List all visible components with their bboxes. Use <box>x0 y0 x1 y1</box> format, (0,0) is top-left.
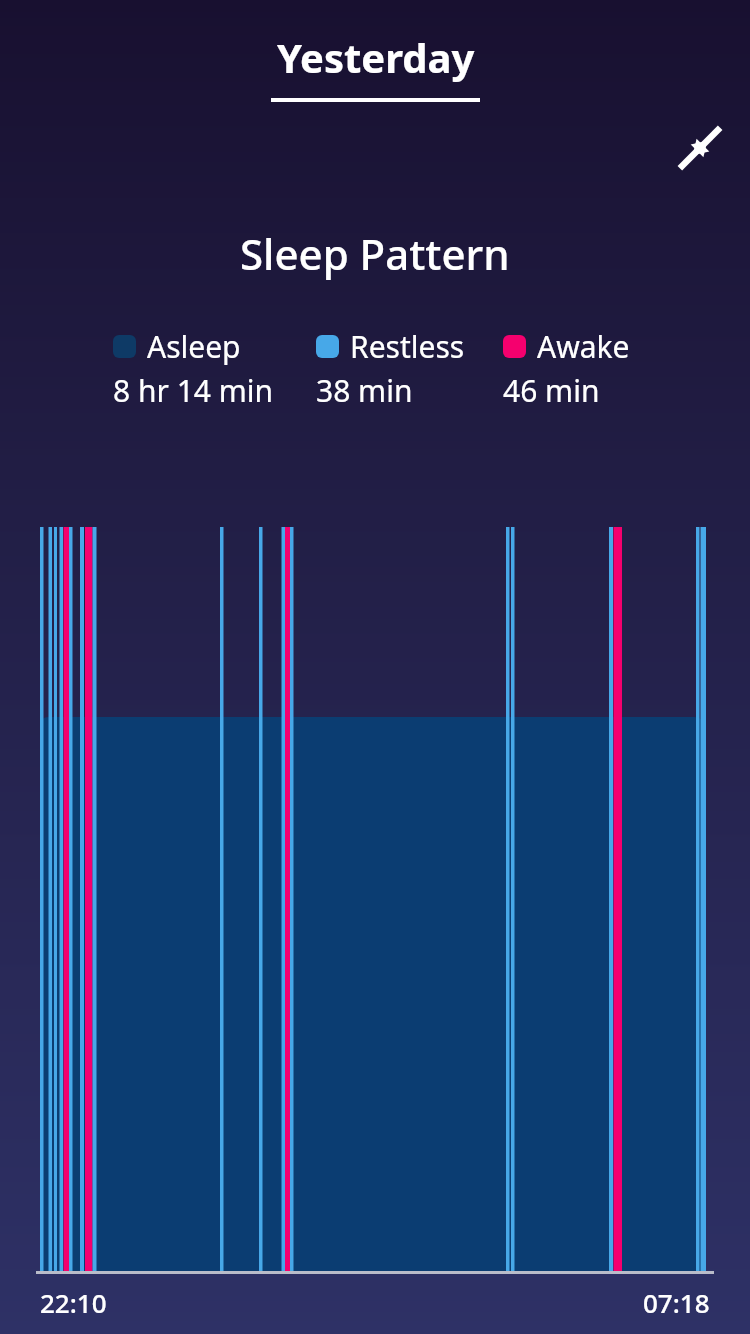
button[interactable]: Restless <box>316 326 465 411</box>
staticText: 46 min <box>503 370 600 411</box>
staticText: Awake <box>537 326 630 367</box>
button[interactable]: Collapse <box>672 120 728 176</box>
staticText: 38 min <box>316 370 413 411</box>
button[interactable]: Awake <box>503 326 630 411</box>
staticText: Yesterday <box>277 30 475 84</box>
staticText: Asleep <box>147 326 241 367</box>
staticText: Sleep Pattern <box>240 225 510 282</box>
button[interactable]: Yesterday <box>263 30 488 102</box>
button[interactable]: Asleep <box>113 326 274 411</box>
staticText: 22:10 <box>40 1285 107 1320</box>
staticText: 07:18 <box>643 1285 710 1320</box>
staticText: Restless <box>350 326 465 367</box>
staticText: 8 hr 14 min <box>113 370 274 411</box>
